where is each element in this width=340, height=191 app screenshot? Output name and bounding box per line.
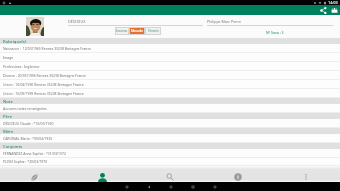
button[interactable]: Rotation [123,183,130,190]
button[interactable]: Arbre [0,166,68,182]
staticText: DÉSCŒUX Claude : *10/05/1930 [3,121,54,126]
button[interactable]: Masculin [129,27,145,35]
staticText: PLISSI Sophie : *20/03/1970 [3,159,48,164]
button[interactable]: Union : 15/09/1999 Rennes 35238 Bretagne… [0,89,340,98]
staticText: FERNANDEZ Anne Sophie : *31/03/1972 [3,151,66,156]
staticText: Professions : Ingénieur [3,64,40,69]
button[interactable]: Imprimer [329,5,340,15]
button[interactable]: PLISSI Sophie : *20/03/1970 [0,158,340,166]
button[interactable]: Union : 10/04/1990 Rennes 35238 Bretagne… [0,80,340,89]
button[interactable]: Applications récentes [189,183,196,190]
staticText: Féminin [148,29,159,33]
staticText: Union : 10/04/1990 Rennes 35238 Bretagne… [3,82,84,87]
staticText: DÉSCŒUX [68,19,86,24]
button[interactable]: Accueil [167,183,174,190]
button[interactable]: Aucunes notes renseignées [0,104,340,113]
button[interactable]: Inconnu [115,27,129,35]
button[interactable]: Professions : Ingénieur [0,62,340,71]
button[interactable]: Féminin [145,27,161,35]
button[interactable]: Image [0,53,340,62]
button[interactable]: FERNANDEZ Anne Sophie : *31/03/1972 [0,149,340,158]
staticText: 14:03 [328,0,338,5]
button[interactable]: Individu [68,166,136,182]
staticText: Conjoints [3,143,23,149]
staticText: N° Sosa : 3 [266,30,284,35]
staticText: Masculin [131,29,144,33]
staticText: Naissance : 12/03/1965 Rennes 35238 Bret… [3,46,91,51]
staticText: Aucunes notes renseignées [3,106,47,111]
staticText: Rubrique(s) [3,38,27,44]
button[interactable]: DÉSCŒUX Claude : *10/05/1930 [0,119,340,128]
staticText: Philippe Marc Pierre [207,19,241,24]
staticText: Mère [3,128,14,134]
staticText: Note [3,98,13,104]
button[interactable]: Partager [318,5,329,15]
button[interactable]: Naissance : 12/03/1965 Rennes 35238 Bret… [0,44,340,53]
staticText: Union : 15/09/1999 Rennes 35238 Bretagne… [3,91,84,96]
button[interactable]: Plus d'options [298,166,314,182]
button[interactable]: Menu [211,183,218,190]
staticText: Image [3,55,14,60]
staticText: Divorce : 20/05/1996 Rennes 35238 Bretag… [3,73,86,78]
button[interactable]: Rechercher [136,166,204,182]
staticText: Inconnu [116,29,128,33]
button[interactable]: Retour [145,183,152,190]
button[interactable]: CARDINAL Marie : *09/04/1935 [0,134,340,143]
button[interactable]: Informations [204,166,272,182]
staticText: CARDINAL Marie : *09/04/1935 [3,136,53,141]
staticText: Père [3,113,13,119]
button[interactable]: Divorce : 20/05/1996 Rennes 35238 Bretag… [0,71,340,80]
